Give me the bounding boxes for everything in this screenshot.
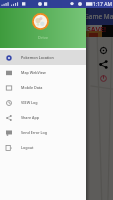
button[interactable]: Pokemon Location <box>0 50 86 65</box>
button[interactable]: Logout <box>0 140 86 155</box>
button[interactable]: Mobile Data <box>0 80 86 95</box>
staticText: SAVE! <box>87 25 106 35</box>
button[interactable]: Send Error Log <box>0 125 86 140</box>
button[interactable]: My location <box>97 44 109 56</box>
staticText: 1:17 AM <box>93 1 112 8</box>
staticText: Game Map <box>84 12 113 21</box>
staticText: Logout <box>21 145 34 150</box>
staticText: Send Error Log <box>21 130 48 135</box>
button[interactable]: Share <box>97 58 109 70</box>
staticText: Share App <box>21 115 39 120</box>
button[interactable]: Share App <box>0 110 86 125</box>
button[interactable]: Map WebView <box>0 65 86 80</box>
staticText: Drive <box>0 35 86 41</box>
staticText: Mobile Data <box>21 85 43 90</box>
staticText: Pokemon Location <box>21 55 54 60</box>
button[interactable]: VIEW Log <box>0 95 86 110</box>
staticText: VIEW Log <box>21 100 38 105</box>
staticText: Map WebView <box>21 70 46 75</box>
button[interactable]: Power <box>97 72 109 84</box>
